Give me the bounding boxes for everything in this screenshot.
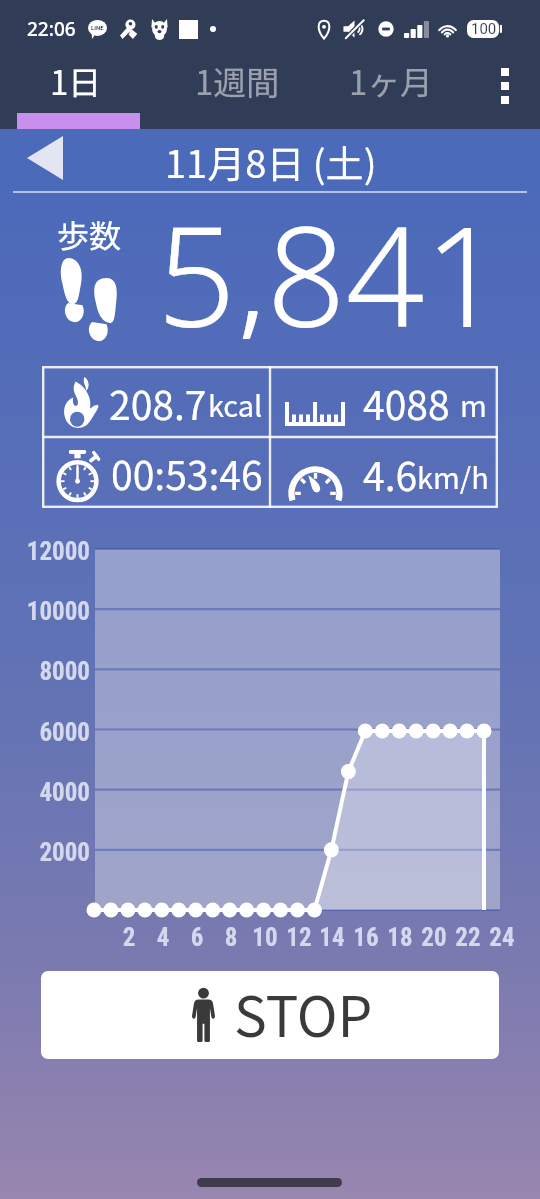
staticText: 1週間	[195, 57, 280, 105]
button[interactable]: 208.7	[42, 366, 270, 437]
staticText: 8000	[2, 657, 90, 686]
staticText: 20	[414, 923, 454, 952]
button[interactable]: Previous day	[16, 129, 74, 187]
staticText: 11月8日 (土)	[165, 134, 377, 189]
button[interactable]: 1日	[0, 55, 154, 129]
staticText: 00:53:46	[111, 445, 263, 501]
button[interactable]: 1週間	[159, 55, 315, 129]
staticText: 12	[279, 923, 319, 952]
staticText: 5,841	[157, 179, 504, 339]
button[interactable]: 4088	[270, 366, 498, 437]
staticText: 歩数	[57, 211, 122, 257]
staticText: 4.6	[363, 446, 418, 502]
staticText: 24	[482, 923, 522, 952]
button[interactable]: 4.6	[270, 437, 498, 508]
staticText: 10	[245, 923, 285, 952]
staticText: 100	[471, 20, 497, 38]
staticText: 16	[346, 923, 386, 952]
staticText: m	[460, 383, 487, 425]
staticText: 4088	[363, 375, 450, 431]
staticText: km/h	[417, 455, 489, 497]
staticText: 6	[177, 923, 217, 952]
staticText: 208.7	[109, 375, 207, 431]
staticText: 18	[380, 923, 420, 952]
staticText: 22:06	[27, 16, 76, 42]
staticText: 2000	[2, 838, 90, 867]
staticText: 4	[143, 923, 183, 952]
button[interactable]: More options	[470, 55, 540, 129]
button[interactable]: 1ヶ月	[313, 55, 469, 129]
staticText: kcal	[208, 383, 263, 425]
staticText: STOP	[234, 973, 373, 1053]
staticText: 1日	[50, 57, 102, 105]
staticText: 8	[211, 923, 251, 952]
staticText: 2	[109, 923, 149, 952]
staticText: 14	[312, 923, 352, 952]
staticText: 10000	[2, 597, 90, 626]
button[interactable]: 00:53:46	[42, 437, 270, 508]
staticText: 12000	[2, 537, 90, 566]
button[interactable]: STOP	[41, 971, 499, 1059]
staticText: 1ヶ月	[349, 57, 434, 105]
staticText: 4000	[2, 778, 90, 807]
staticText: 22	[448, 923, 488, 952]
staticText: LINE	[91, 24, 104, 31]
staticText: 6000	[2, 718, 90, 747]
